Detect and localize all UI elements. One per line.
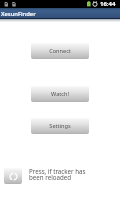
button[interactable]: Refresh <box>4 168 22 184</box>
staticText: XesunFinder <box>1 10 36 18</box>
staticText: Settings <box>49 122 71 130</box>
button[interactable]: Watch! <box>31 86 89 102</box>
button[interactable]: Settings <box>31 118 89 134</box>
staticText: Press, if tracker has been reloaded <box>29 167 86 182</box>
staticText: Watch! <box>51 90 69 98</box>
staticText: 16:44 <box>100 0 116 8</box>
staticText: Connect <box>49 47 71 55</box>
button[interactable]: Connect <box>31 43 89 59</box>
